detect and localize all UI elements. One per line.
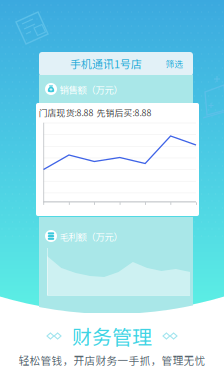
staticText: 毛利额（万元） [59, 230, 122, 243]
staticText: 门店现货:8.88 [38, 106, 93, 119]
staticText: 手机通讯1号店 [70, 56, 142, 71]
staticText: 销售额（万元） [59, 83, 122, 96]
staticText: 先销后买:8.88 [96, 106, 151, 119]
button[interactable]: 手机通讯1号店 [61, 54, 151, 72]
staticText: 筛选 [165, 57, 183, 70]
button[interactable]: 筛选 [163, 55, 185, 71]
staticText: 财务管理 [72, 321, 152, 350]
staticText: 轻松管钱，开店财务一手抓，管理无忧 [18, 352, 205, 368]
